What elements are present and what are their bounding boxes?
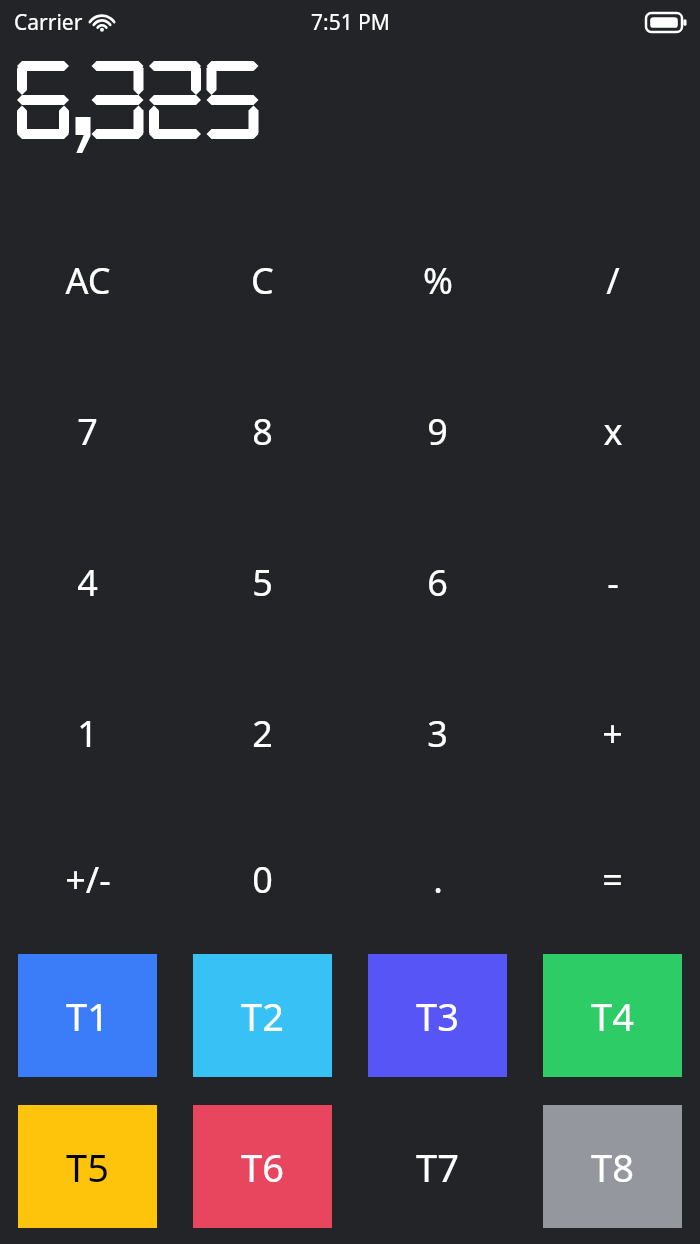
- staticText: Carrier: [14, 8, 83, 37]
- button[interactable]: x: [525, 356, 700, 507]
- staticText: C: [251, 256, 274, 305]
- staticText: T2: [241, 990, 284, 1042]
- button[interactable]: 6: [350, 507, 525, 658]
- staticText: 0: [252, 855, 273, 904]
- button[interactable]: 8: [175, 356, 350, 507]
- button[interactable]: T3: [368, 954, 507, 1077]
- button[interactable]: T4: [543, 954, 682, 1077]
- button[interactable]: 5: [175, 507, 350, 658]
- button[interactable]: +/-: [0, 809, 175, 949]
- button[interactable]: T5: [18, 1105, 157, 1228]
- staticText: 8: [252, 407, 273, 456]
- staticText: T3: [416, 990, 459, 1042]
- staticText: T8: [591, 1141, 634, 1193]
- staticText: T6: [241, 1141, 284, 1193]
- button[interactable]: /: [525, 204, 700, 356]
- button[interactable]: 7: [0, 356, 175, 507]
- staticText: T4: [591, 990, 634, 1042]
- staticText: x: [603, 407, 623, 456]
- staticText: 7:51 PM: [311, 8, 390, 37]
- staticText: /: [606, 256, 620, 305]
- button[interactable]: T7: [368, 1105, 507, 1228]
- button[interactable]: T8: [543, 1105, 682, 1228]
- button[interactable]: 0: [175, 809, 350, 949]
- button[interactable]: .: [350, 809, 525, 949]
- button[interactable]: AC: [0, 204, 175, 356]
- button[interactable]: 1: [0, 658, 175, 809]
- staticText: 2: [252, 709, 273, 758]
- staticText: 7: [77, 407, 98, 456]
- staticText: .: [433, 855, 443, 904]
- staticText: 1: [77, 709, 98, 758]
- button[interactable]: 9: [350, 356, 525, 507]
- staticText: 9: [427, 407, 448, 456]
- button[interactable]: T2: [193, 954, 332, 1077]
- button[interactable]: C: [175, 204, 350, 356]
- button[interactable]: T6: [193, 1105, 332, 1228]
- staticText: -: [607, 558, 619, 607]
- staticText: %: [423, 256, 453, 305]
- button[interactable]: 2: [175, 658, 350, 809]
- button[interactable]: 4: [0, 507, 175, 658]
- button[interactable]: 3: [350, 658, 525, 809]
- staticText: T5: [66, 1141, 109, 1193]
- staticText: T7: [416, 1141, 459, 1193]
- staticText: 5: [252, 558, 273, 607]
- button[interactable]: +: [525, 658, 700, 809]
- button[interactable]: =: [525, 809, 700, 949]
- button[interactable]: T1: [18, 954, 157, 1077]
- staticText: 4: [77, 558, 98, 607]
- staticText: +/-: [65, 855, 111, 904]
- button[interactable]: %: [350, 204, 525, 356]
- button[interactable]: -: [525, 507, 700, 658]
- staticText: AC: [65, 256, 111, 305]
- staticText: 6: [427, 558, 448, 607]
- staticText: T1: [66, 990, 109, 1042]
- staticText: +: [602, 709, 623, 758]
- staticText: =: [602, 855, 623, 904]
- staticText: 3: [427, 709, 448, 758]
